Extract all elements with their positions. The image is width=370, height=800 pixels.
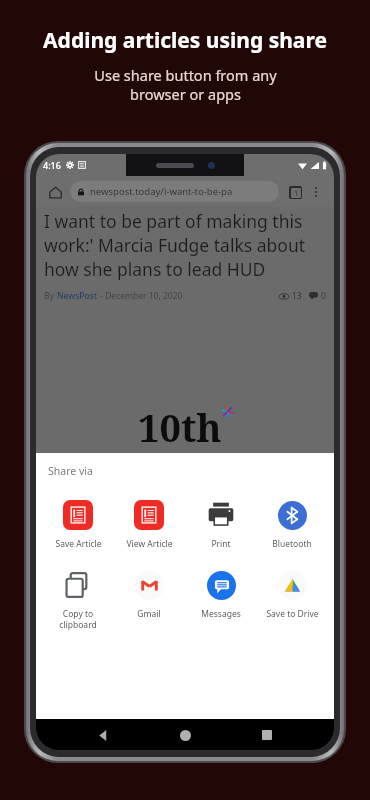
button[interactable]: newspost.today/i-want-to-be-pa (70, 181, 279, 202)
staticText: - December 10, 2020 (98, 290, 183, 302)
staticText: Save to Drive (266, 608, 319, 620)
staticText: Save Article (55, 538, 102, 550)
button[interactable]: Recent apps (252, 720, 282, 750)
staticText: Adding articles using share (43, 26, 327, 55)
staticText: Gmail (137, 608, 161, 620)
staticText: 10th (138, 401, 222, 453)
button[interactable]: View Article (115, 496, 183, 552)
button[interactable]: Home (170, 720, 200, 750)
staticText: Share via (48, 464, 93, 478)
button[interactable]: Back (88, 720, 118, 750)
staticText: I want to be part of making this work:' … (44, 209, 326, 281)
staticText: newspost.today/i-want-to-be-pa (90, 185, 233, 198)
button[interactable]: More options (306, 182, 326, 202)
staticText: 1 (294, 188, 299, 198)
staticText: 4:16 (43, 159, 61, 171)
staticText: Messages (201, 608, 241, 620)
button[interactable]: Save Article (44, 496, 112, 552)
button[interactable]: Gmail (115, 566, 183, 622)
staticText: Use share button from any browser or app… (94, 65, 277, 104)
staticText: Copy to clipboard (59, 608, 97, 630)
staticText: 13 (292, 290, 302, 302)
button[interactable]: Print (187, 496, 255, 552)
staticText: 0 (321, 290, 326, 302)
button[interactable]: Home (44, 181, 66, 203)
button[interactable]: Save to Drive (258, 566, 326, 622)
staticText: Bluetooth (272, 538, 312, 550)
button[interactable]: Bluetooth (258, 496, 326, 552)
staticText: Print (211, 538, 231, 550)
staticText: By (44, 290, 57, 302)
staticText: View Article (126, 538, 173, 550)
button[interactable]: Messages (187, 566, 255, 622)
button[interactable]: Copy to clipboard (44, 566, 112, 632)
button[interactable]: Tabs (284, 181, 306, 203)
button[interactable]: NewsPost (57, 290, 98, 302)
